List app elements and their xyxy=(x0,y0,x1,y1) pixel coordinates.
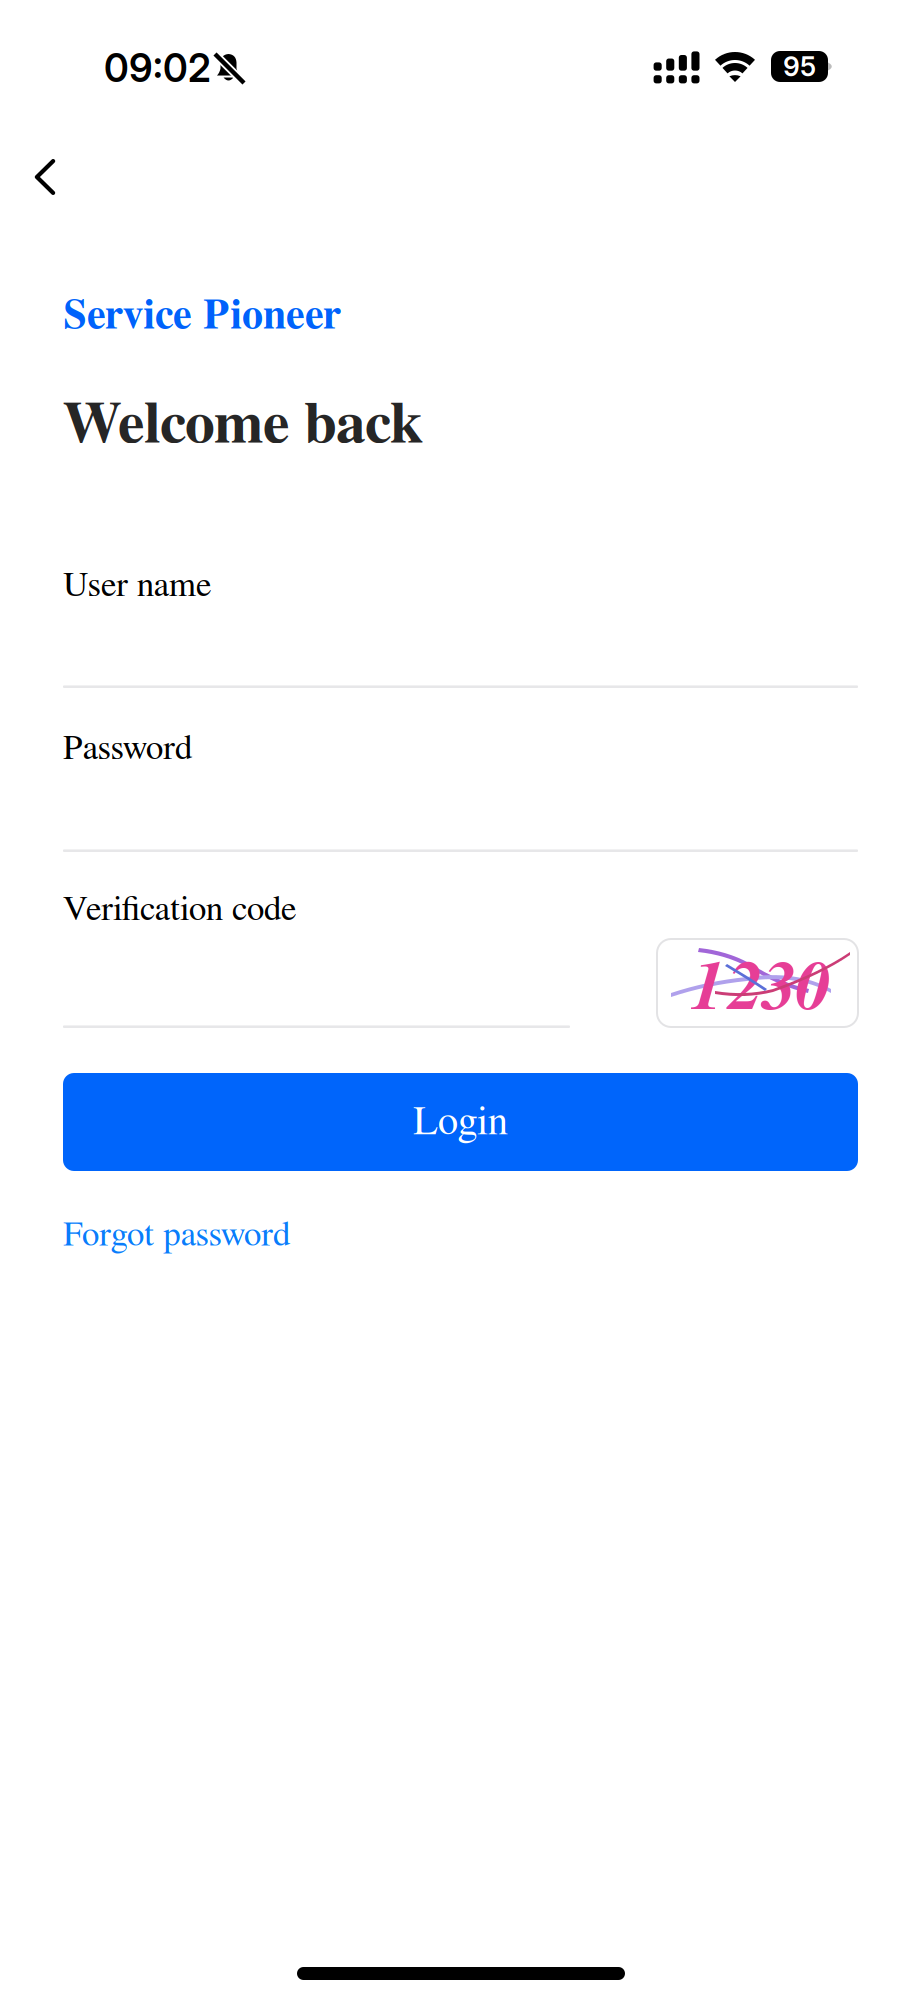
staticText: User name xyxy=(63,568,212,603)
button[interactable]: Login xyxy=(63,1073,858,1171)
staticText: Welcome back xyxy=(63,395,423,454)
button[interactable]: Forgot password xyxy=(63,1215,290,1255)
button[interactable]: Password xyxy=(63,688,858,852)
staticText: Forgot password xyxy=(63,1217,290,1252)
button[interactable]: Refresh verification code xyxy=(657,939,858,1027)
button[interactable]: User name xyxy=(63,525,858,688)
staticText: Service Pioneer xyxy=(63,295,341,337)
staticText: Verification code xyxy=(63,892,297,927)
staticText: Password xyxy=(63,731,192,766)
button[interactable]: Back xyxy=(1,133,89,221)
staticText: 95 xyxy=(783,50,816,83)
staticText: 1230 xyxy=(690,953,830,1023)
staticText: Login xyxy=(413,1102,508,1142)
button[interactable]: Verification code xyxy=(63,852,570,1028)
staticText: 09:02 xyxy=(104,45,211,91)
